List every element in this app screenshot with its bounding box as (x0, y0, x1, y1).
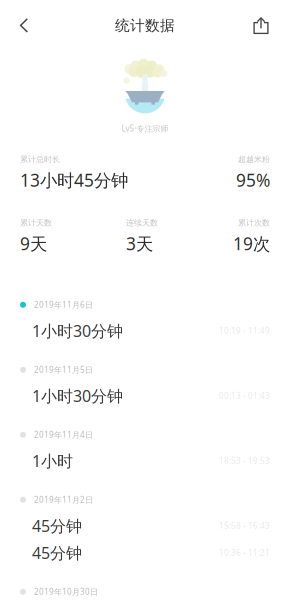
staticText: 10:19 - 11:49 (219, 325, 270, 336)
staticText: 超越米粉 (238, 154, 270, 164)
staticText: 2019年11月4日 (34, 429, 93, 440)
staticText: 2019年10月30日 (34, 586, 98, 597)
staticText: 连续天数 (126, 218, 158, 228)
staticText: 18:53 - 19:53 (219, 455, 270, 466)
staticText: 2019年11月5日 (34, 364, 93, 375)
button[interactable]: 1小时30分钟 (0, 312, 290, 339)
button[interactable]: 1小时 (0, 442, 290, 469)
staticText: 19次 (233, 232, 270, 255)
staticText: 10:36 - 11:21 (219, 547, 270, 558)
button[interactable]: 45分钟 (0, 507, 290, 534)
staticText: 累计总时长 (20, 154, 60, 164)
button[interactable]: Share (239, 3, 290, 47)
staticText: 1小时30分钟 (32, 385, 123, 406)
staticText: 1小时30分钟 (32, 320, 123, 341)
staticText: 3天 (126, 232, 153, 255)
staticText: 2019年11月2日 (34, 494, 93, 505)
staticText: 1小时 (32, 450, 73, 471)
staticText: 13小时45分钟 (20, 168, 128, 191)
button[interactable]: 45分钟 (0, 534, 290, 561)
button[interactable]: Back (0, 3, 46, 47)
staticText: 统计数据 (115, 16, 175, 34)
staticText: 45分钟 (32, 515, 82, 536)
button[interactable]: 1小时30分钟 (0, 377, 290, 404)
staticText: 15:58 - 16:43 (219, 520, 270, 531)
staticText: 00:13 - 01:43 (219, 390, 270, 401)
staticText: 45分钟 (32, 542, 82, 563)
staticText: 95% (236, 168, 270, 191)
staticText: 2019年11月6日 (34, 299, 93, 310)
staticText: Lv5·专注宗师 (121, 123, 168, 134)
staticText: 累计次数 (238, 218, 270, 228)
staticText: 9天 (20, 232, 47, 255)
staticText: 累计天数 (20, 218, 52, 228)
